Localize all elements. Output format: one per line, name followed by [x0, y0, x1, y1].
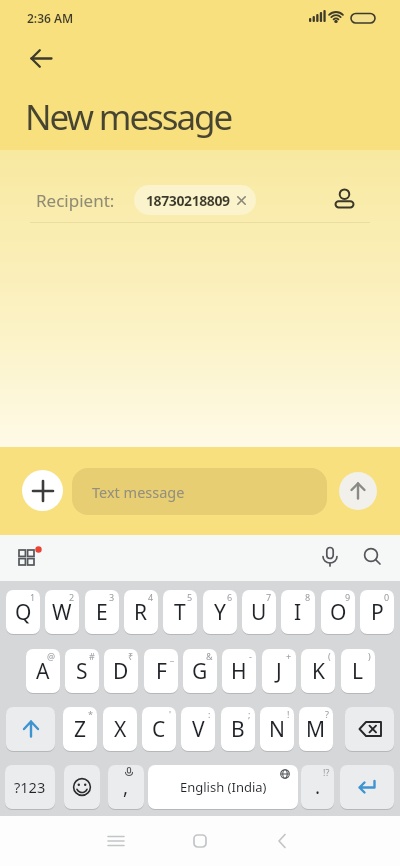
- button[interactable]: [271, 829, 295, 853]
- button[interactable]: ,: [108, 765, 144, 809]
- button[interactable]: B: [221, 707, 255, 751]
- staticText: Q: [15, 598, 32, 627]
- button[interactable]: C: [142, 707, 176, 751]
- staticText: 18730218809: [146, 191, 230, 210]
- button[interactable]: M: [299, 707, 333, 751]
- staticText: Text message: [92, 482, 185, 502]
- staticText: &: [206, 650, 213, 662]
- staticText: !?: [323, 766, 330, 778]
- button[interactable]: [64, 765, 100, 809]
- staticText: 7: [266, 591, 272, 603]
- staticText: 4: [148, 591, 154, 603]
- button[interactable]: U: [242, 590, 276, 634]
- staticText: X: [114, 715, 127, 744]
- button[interactable]: [339, 472, 377, 510]
- staticText: G: [192, 657, 208, 686]
- button[interactable]: [104, 829, 128, 853]
- button[interactable]: L: [341, 649, 375, 693]
- button[interactable]: N: [260, 707, 294, 751]
- staticText: A: [36, 657, 50, 686]
- button[interactable]: H: [222, 649, 256, 693]
- button[interactable]: [345, 707, 394, 751]
- staticText: O: [330, 598, 347, 627]
- button[interactable]: English (India): [148, 765, 298, 809]
- staticText: N: [269, 715, 285, 744]
- staticText: C: [152, 715, 166, 744]
- staticText: :: [208, 708, 211, 720]
- staticText: Y: [214, 598, 226, 627]
- staticText: 9: [345, 591, 351, 603]
- staticText: 2: [69, 591, 75, 603]
- button[interactable]: V: [181, 707, 215, 751]
- button[interactable]: [318, 545, 342, 569]
- staticText: M: [306, 715, 326, 744]
- button[interactable]: O: [321, 590, 355, 634]
- button[interactable]: [188, 829, 212, 853]
- staticText: New message: [25, 93, 232, 141]
- staticText: +: [286, 650, 292, 662]
- button[interactable]: T: [163, 590, 197, 634]
- button[interactable]: E: [85, 590, 119, 634]
- button[interactable]: X: [103, 707, 137, 751]
- staticText: P: [371, 598, 384, 627]
- staticText: V: [192, 715, 205, 744]
- staticText: (: [328, 650, 331, 662]
- staticText: ?: [325, 708, 329, 720]
- button[interactable]: Y: [203, 590, 237, 634]
- staticText: *: [88, 708, 93, 720]
- button[interactable]: [19, 37, 63, 81]
- staticText: Z: [74, 715, 87, 744]
- staticText: ,: [123, 774, 129, 800]
- button[interactable]: [340, 765, 394, 809]
- staticText: !: [287, 708, 290, 720]
- staticText: T: [174, 598, 186, 627]
- button[interactable]: K: [301, 649, 335, 693]
- button[interactable]: Text message: [72, 468, 327, 515]
- staticText: D: [113, 657, 129, 686]
- button[interactable]: S: [65, 649, 99, 693]
- button[interactable]: Z: [63, 707, 97, 751]
- button[interactable]: P: [360, 590, 394, 634]
- button[interactable]: ?123: [5, 765, 55, 809]
- staticText: @: [47, 650, 56, 662]
- staticText: I: [294, 598, 302, 627]
- button[interactable]: J: [262, 649, 296, 693]
- staticText: S: [76, 657, 88, 686]
- staticText: 0: [384, 591, 390, 603]
- button[interactable]: R: [124, 590, 158, 634]
- button[interactable]: .: [301, 765, 334, 809]
- button[interactable]: [360, 545, 384, 569]
- staticText: ': [169, 708, 172, 720]
- staticText: J: [276, 657, 282, 686]
- staticText: #: [89, 650, 95, 662]
- staticText: W: [52, 598, 72, 627]
- staticText: H: [231, 657, 247, 686]
- staticText: 2:36 AM: [27, 10, 74, 26]
- button[interactable]: [6, 707, 55, 751]
- button[interactable]: Q: [6, 590, 40, 634]
- staticText: ₹: [128, 650, 134, 662]
- button[interactable]: 18730218809: [134, 185, 256, 215]
- staticText: ;: [248, 708, 251, 720]
- staticText: F: [156, 657, 167, 686]
- button[interactable]: [327, 178, 363, 214]
- staticText: .: [315, 774, 321, 800]
- button[interactable]: F: [144, 649, 178, 693]
- staticText: E: [96, 598, 108, 627]
- staticText: 5: [187, 591, 193, 603]
- staticText: L: [352, 657, 364, 686]
- staticText: 8: [305, 591, 311, 603]
- button[interactable]: W: [45, 590, 79, 634]
- button[interactable]: [8, 541, 44, 577]
- button[interactable]: I: [281, 590, 315, 634]
- button[interactable]: [22, 470, 63, 511]
- button[interactable]: D: [104, 649, 138, 693]
- button[interactable]: A: [26, 649, 60, 693]
- staticText: ): [368, 650, 371, 662]
- button[interactable]: G: [183, 649, 217, 693]
- staticText: B: [231, 715, 245, 744]
- staticText: 3: [109, 591, 115, 603]
- staticText: 1: [30, 591, 36, 603]
- staticText: K: [312, 657, 325, 686]
- staticText: U: [251, 598, 267, 627]
